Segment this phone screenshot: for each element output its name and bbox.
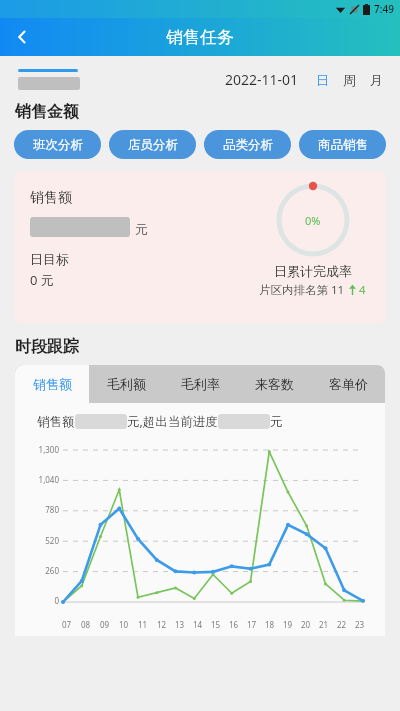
button[interactable]: 品类分析	[204, 130, 291, 159]
staticText: 销售额	[33, 376, 72, 392]
staticText: 日累计完成率	[274, 263, 352, 279]
staticText: 19	[283, 619, 293, 630]
staticText: 780	[19, 504, 59, 515]
staticText: 1,040	[19, 474, 59, 485]
staticText: 07	[62, 619, 72, 630]
button[interactable]: 店员分析	[109, 130, 196, 159]
staticText: 销售额	[30, 189, 72, 207]
staticText: 毛利额	[107, 376, 146, 392]
staticText: 2022-11-01	[225, 70, 299, 89]
staticText: 月	[370, 72, 383, 88]
staticText: 520	[19, 535, 59, 546]
button[interactable]: 毛利额	[89, 365, 163, 403]
staticText: 7:49	[374, 2, 394, 16]
button[interactable]: 毛利率	[163, 365, 237, 403]
staticText: 店员分析	[128, 137, 178, 153]
button[interactable]: 商品销售	[299, 130, 386, 159]
staticText: 日	[316, 72, 329, 88]
staticText: 日目标	[30, 251, 69, 267]
staticText: 10	[119, 619, 129, 630]
staticText: 销售金额	[15, 102, 79, 122]
staticText: 1,300	[19, 444, 59, 455]
button[interactable]: 周	[340, 72, 359, 88]
button[interactable]: 月	[367, 72, 386, 88]
staticText: 17	[247, 619, 257, 630]
staticText: 0	[19, 595, 59, 606]
staticText: 16	[229, 619, 239, 630]
staticText: 客单价	[329, 376, 368, 392]
staticText: 18	[265, 619, 275, 630]
staticText: 品类分析	[223, 137, 273, 153]
staticText: 毛利率	[181, 376, 220, 392]
staticText: 元	[135, 221, 148, 237]
staticText: 260	[19, 565, 59, 576]
button[interactable]: 销售额	[15, 365, 89, 403]
staticText: 片区内排名第 11	[259, 282, 345, 298]
staticText: 来客数	[255, 376, 294, 392]
button[interactable]: Back	[0, 18, 44, 56]
staticText: 11	[138, 619, 148, 630]
button[interactable]: 日	[313, 72, 332, 88]
staticText: 班次分析	[33, 137, 83, 153]
staticText: 09	[100, 619, 110, 630]
staticText: 20	[301, 619, 311, 630]
staticText: 0 元	[30, 271, 54, 289]
staticText: 15	[211, 619, 221, 630]
staticText: 时段跟踪	[15, 337, 79, 357]
staticText: 4	[359, 282, 366, 298]
button[interactable]: 班次分析	[14, 130, 101, 159]
button[interactable]: 来客数	[237, 365, 311, 403]
staticText: 14	[193, 619, 203, 630]
staticText: 销售额	[37, 414, 75, 430]
staticText: 12	[157, 619, 167, 630]
button[interactable]: 销售额	[14, 171, 386, 323]
button[interactable]: 客单价	[311, 365, 385, 403]
staticText: 13	[175, 619, 185, 630]
staticText: 周	[343, 72, 356, 88]
staticText: 销售任务	[166, 27, 234, 48]
staticText: 商品销售	[318, 137, 368, 153]
staticText: 元,超出当前进度	[127, 413, 218, 430]
staticText: 23	[355, 619, 365, 630]
staticText: 21	[319, 619, 329, 630]
staticText: 元	[270, 414, 283, 430]
staticText: 0%	[305, 213, 321, 228]
staticText: 22	[337, 619, 347, 630]
staticText: 08	[81, 619, 91, 630]
